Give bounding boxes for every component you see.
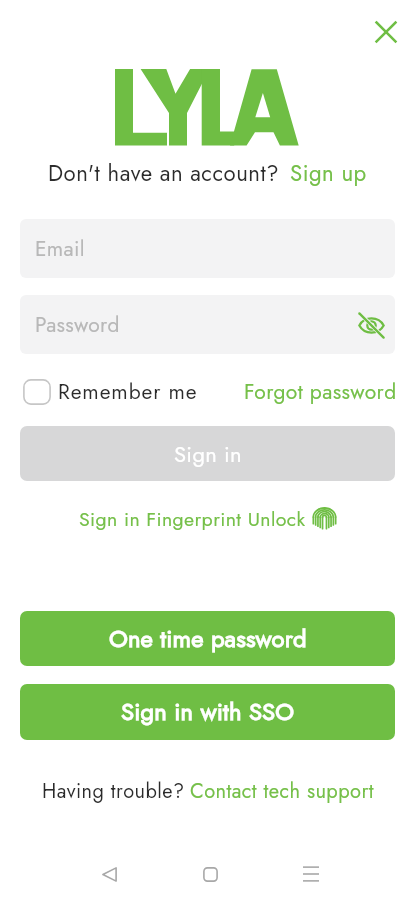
- button[interactable]: Email: [20, 219, 395, 278]
- staticText: Email: [35, 234, 85, 264]
- button[interactable]: Show password: [351, 305, 391, 345]
- button[interactable]: Sign in Fingerprint Unlock: [0, 505, 415, 533]
- staticText: One time password: [109, 622, 307, 656]
- button[interactable]: Sign up: [280, 157, 367, 189]
- staticText: Remember me: [58, 377, 198, 407]
- button[interactable]: Close: [362, 8, 410, 56]
- staticText: Sign in Fingerprint Unlock: [79, 505, 306, 533]
- staticText: Sign up: [290, 157, 367, 189]
- staticText: Sign in with SSO: [121, 695, 295, 729]
- button[interactable]: Home: [186, 850, 234, 898]
- staticText: Having trouble?: [42, 777, 185, 806]
- button[interactable]: Sign in with SSO: [20, 684, 395, 740]
- button[interactable]: Back: [85, 850, 133, 898]
- button[interactable]: Contact tech support: [185, 777, 374, 806]
- button[interactable]: Forgot password: [244, 377, 397, 407]
- button[interactable]: One time password: [20, 611, 395, 666]
- button[interactable]: Password: [20, 295, 395, 354]
- button[interactable]: Recent apps: [287, 850, 335, 898]
- staticText: Forgot password: [244, 377, 397, 407]
- button[interactable]: Sign in: [20, 426, 395, 481]
- staticText: Password: [35, 310, 120, 340]
- staticText: Don't have an account?: [48, 157, 280, 189]
- staticText: Sign in: [174, 438, 242, 470]
- staticText: Contact tech support: [190, 777, 374, 806]
- button[interactable]: Remember me: [23, 377, 198, 407]
